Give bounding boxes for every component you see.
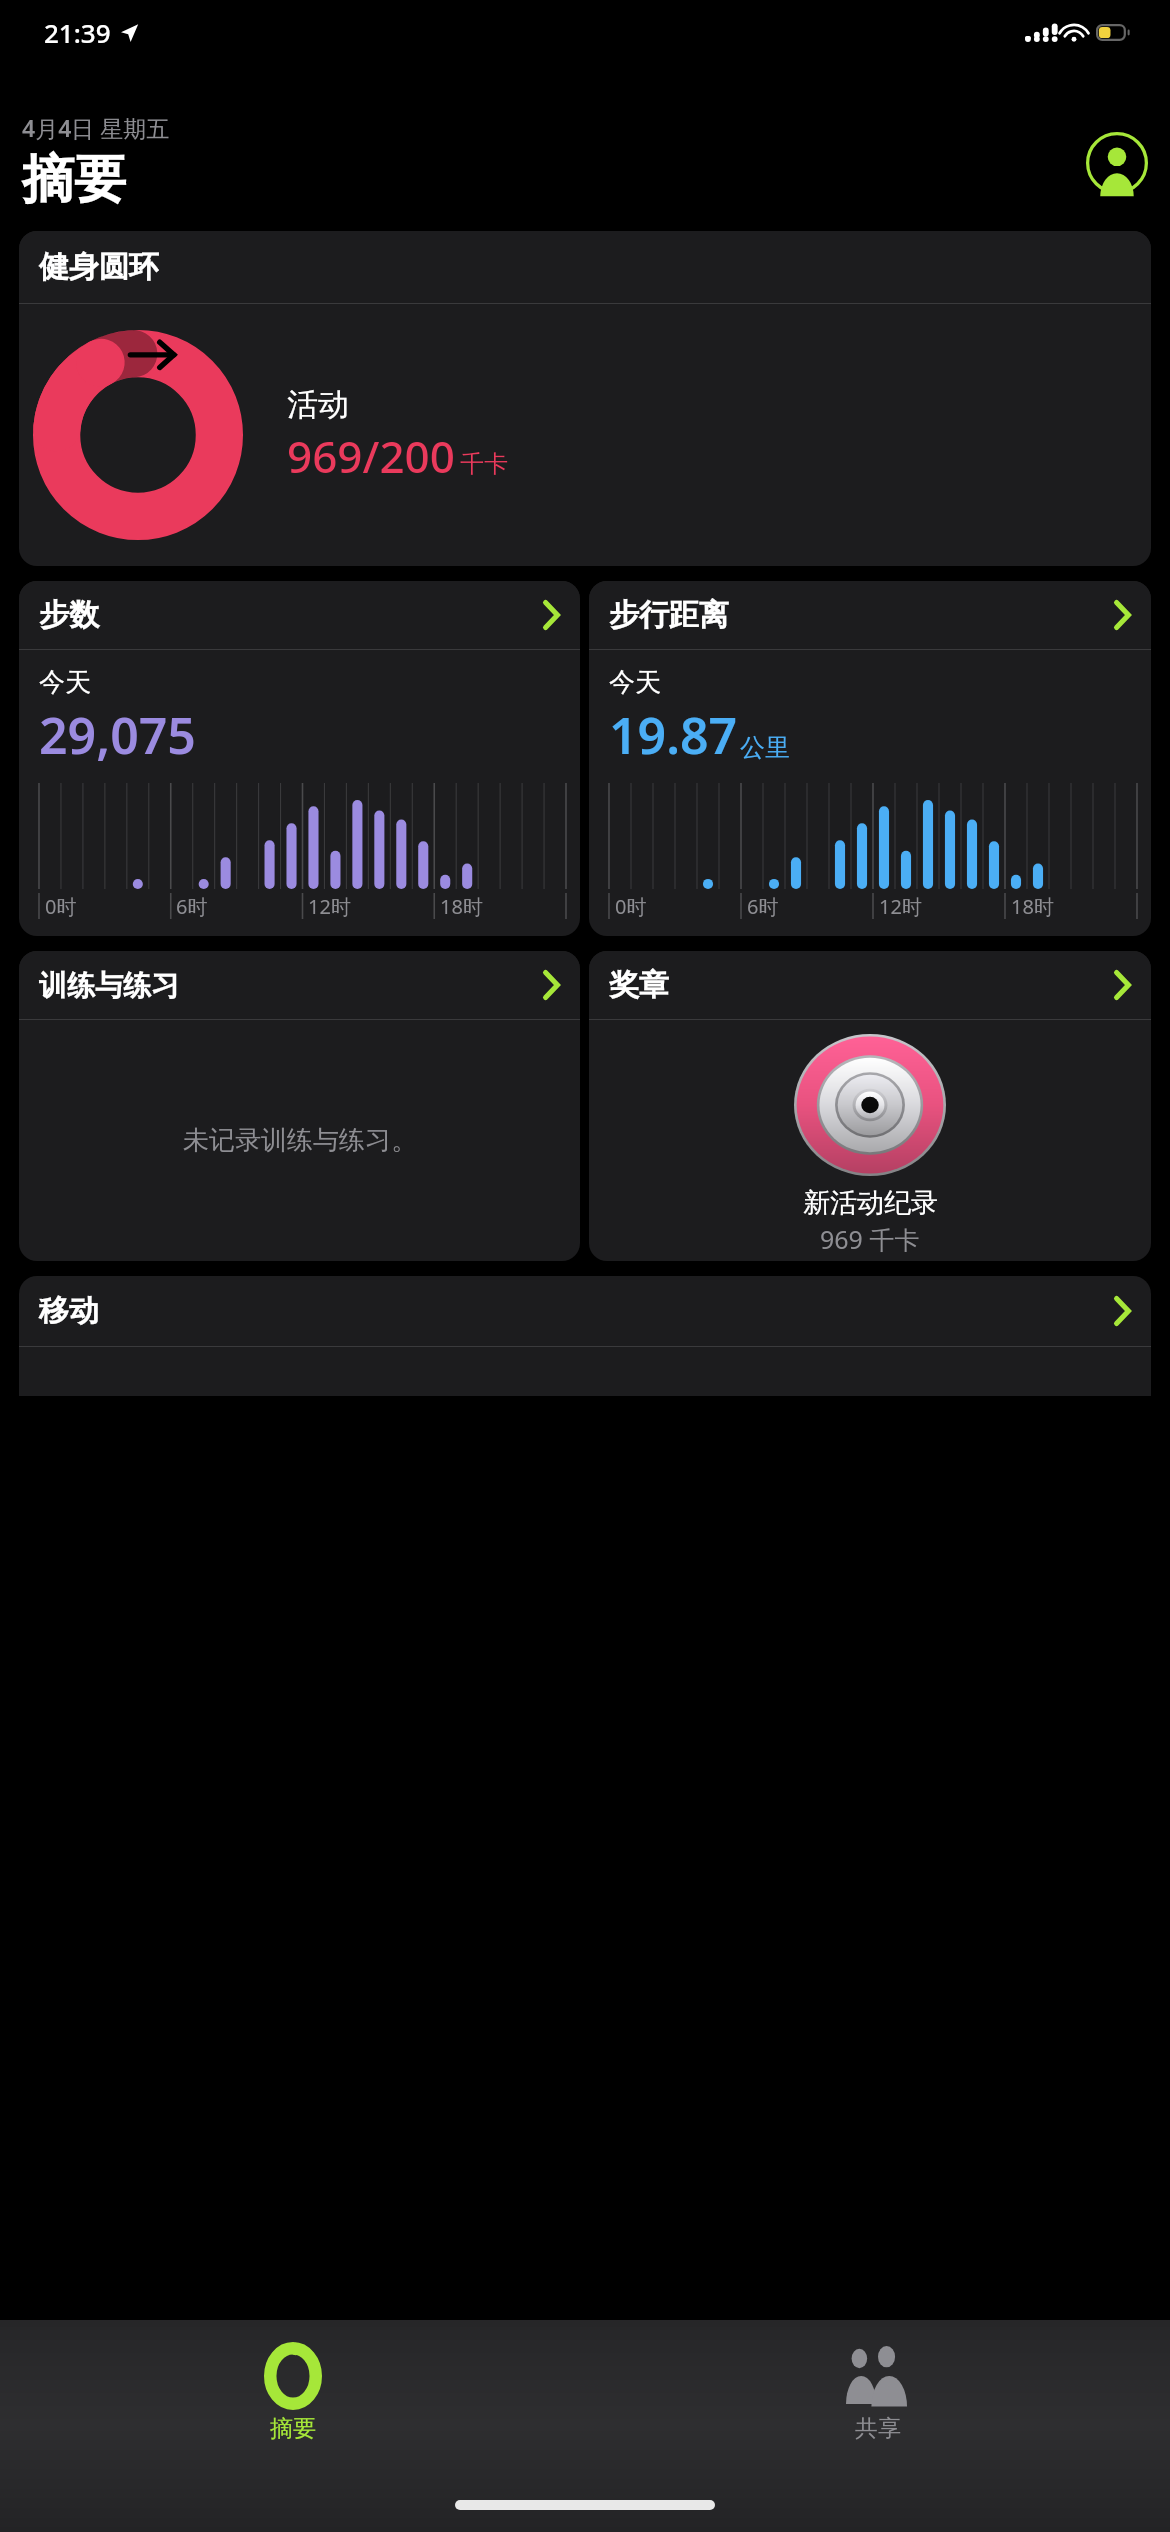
button[interactable]: 共享 (805, 2336, 951, 2449)
staticText: 活动 (287, 385, 349, 424)
staticText: 12时 (879, 893, 922, 920)
staticText: 0时 (615, 893, 647, 920)
staticText: 6时 (747, 893, 779, 920)
staticText: 千卡 (460, 449, 508, 479)
staticText: 摘要 (22, 147, 126, 213)
button[interactable]: 健身圆环 (19, 231, 1151, 566)
button[interactable]: 步数 (19, 581, 580, 936)
button[interactable]: 步行距离 (589, 581, 1151, 936)
staticText: 今天 (609, 666, 661, 699)
staticText: 18时 (440, 893, 483, 920)
staticText: 共享 (855, 2414, 901, 2443)
staticText: 奖章 (609, 966, 669, 1004)
staticText: 18时 (1011, 893, 1054, 920)
staticText: 新活动纪录 (803, 1186, 938, 1220)
button[interactable]: 移动 (19, 1276, 1151, 1396)
staticText: 步行距离 (609, 596, 729, 634)
staticText: 12时 (308, 893, 351, 920)
button[interactable]: 训练与练习 (19, 951, 580, 1261)
button[interactable]: 奖章 (589, 951, 1151, 1261)
staticText: 健身圆环 (39, 248, 159, 286)
staticText: 969/200 (287, 426, 455, 486)
staticText: 今天 (39, 666, 91, 699)
staticText: 公里 (740, 732, 790, 763)
staticText: 未记录训练与练习。 (183, 1124, 417, 1157)
staticText: 训练与练习 (39, 968, 179, 1003)
staticText: 969 千卡 (820, 1222, 920, 1256)
staticText: 0时 (45, 893, 77, 920)
button[interactable]: 个人资料 (1086, 132, 1148, 194)
staticText: 6时 (176, 893, 208, 920)
staticText: 移动 (39, 1292, 99, 1330)
staticText: 摘要 (270, 2414, 316, 2443)
staticText: 19.87 (609, 701, 738, 769)
staticText: 步数 (39, 596, 99, 634)
button[interactable]: 摘要 (224, 2336, 362, 2449)
staticText: 29,075 (39, 701, 196, 769)
staticText: 21:39 (44, 15, 111, 50)
staticText: 4月4日 星期五 (22, 112, 170, 143)
